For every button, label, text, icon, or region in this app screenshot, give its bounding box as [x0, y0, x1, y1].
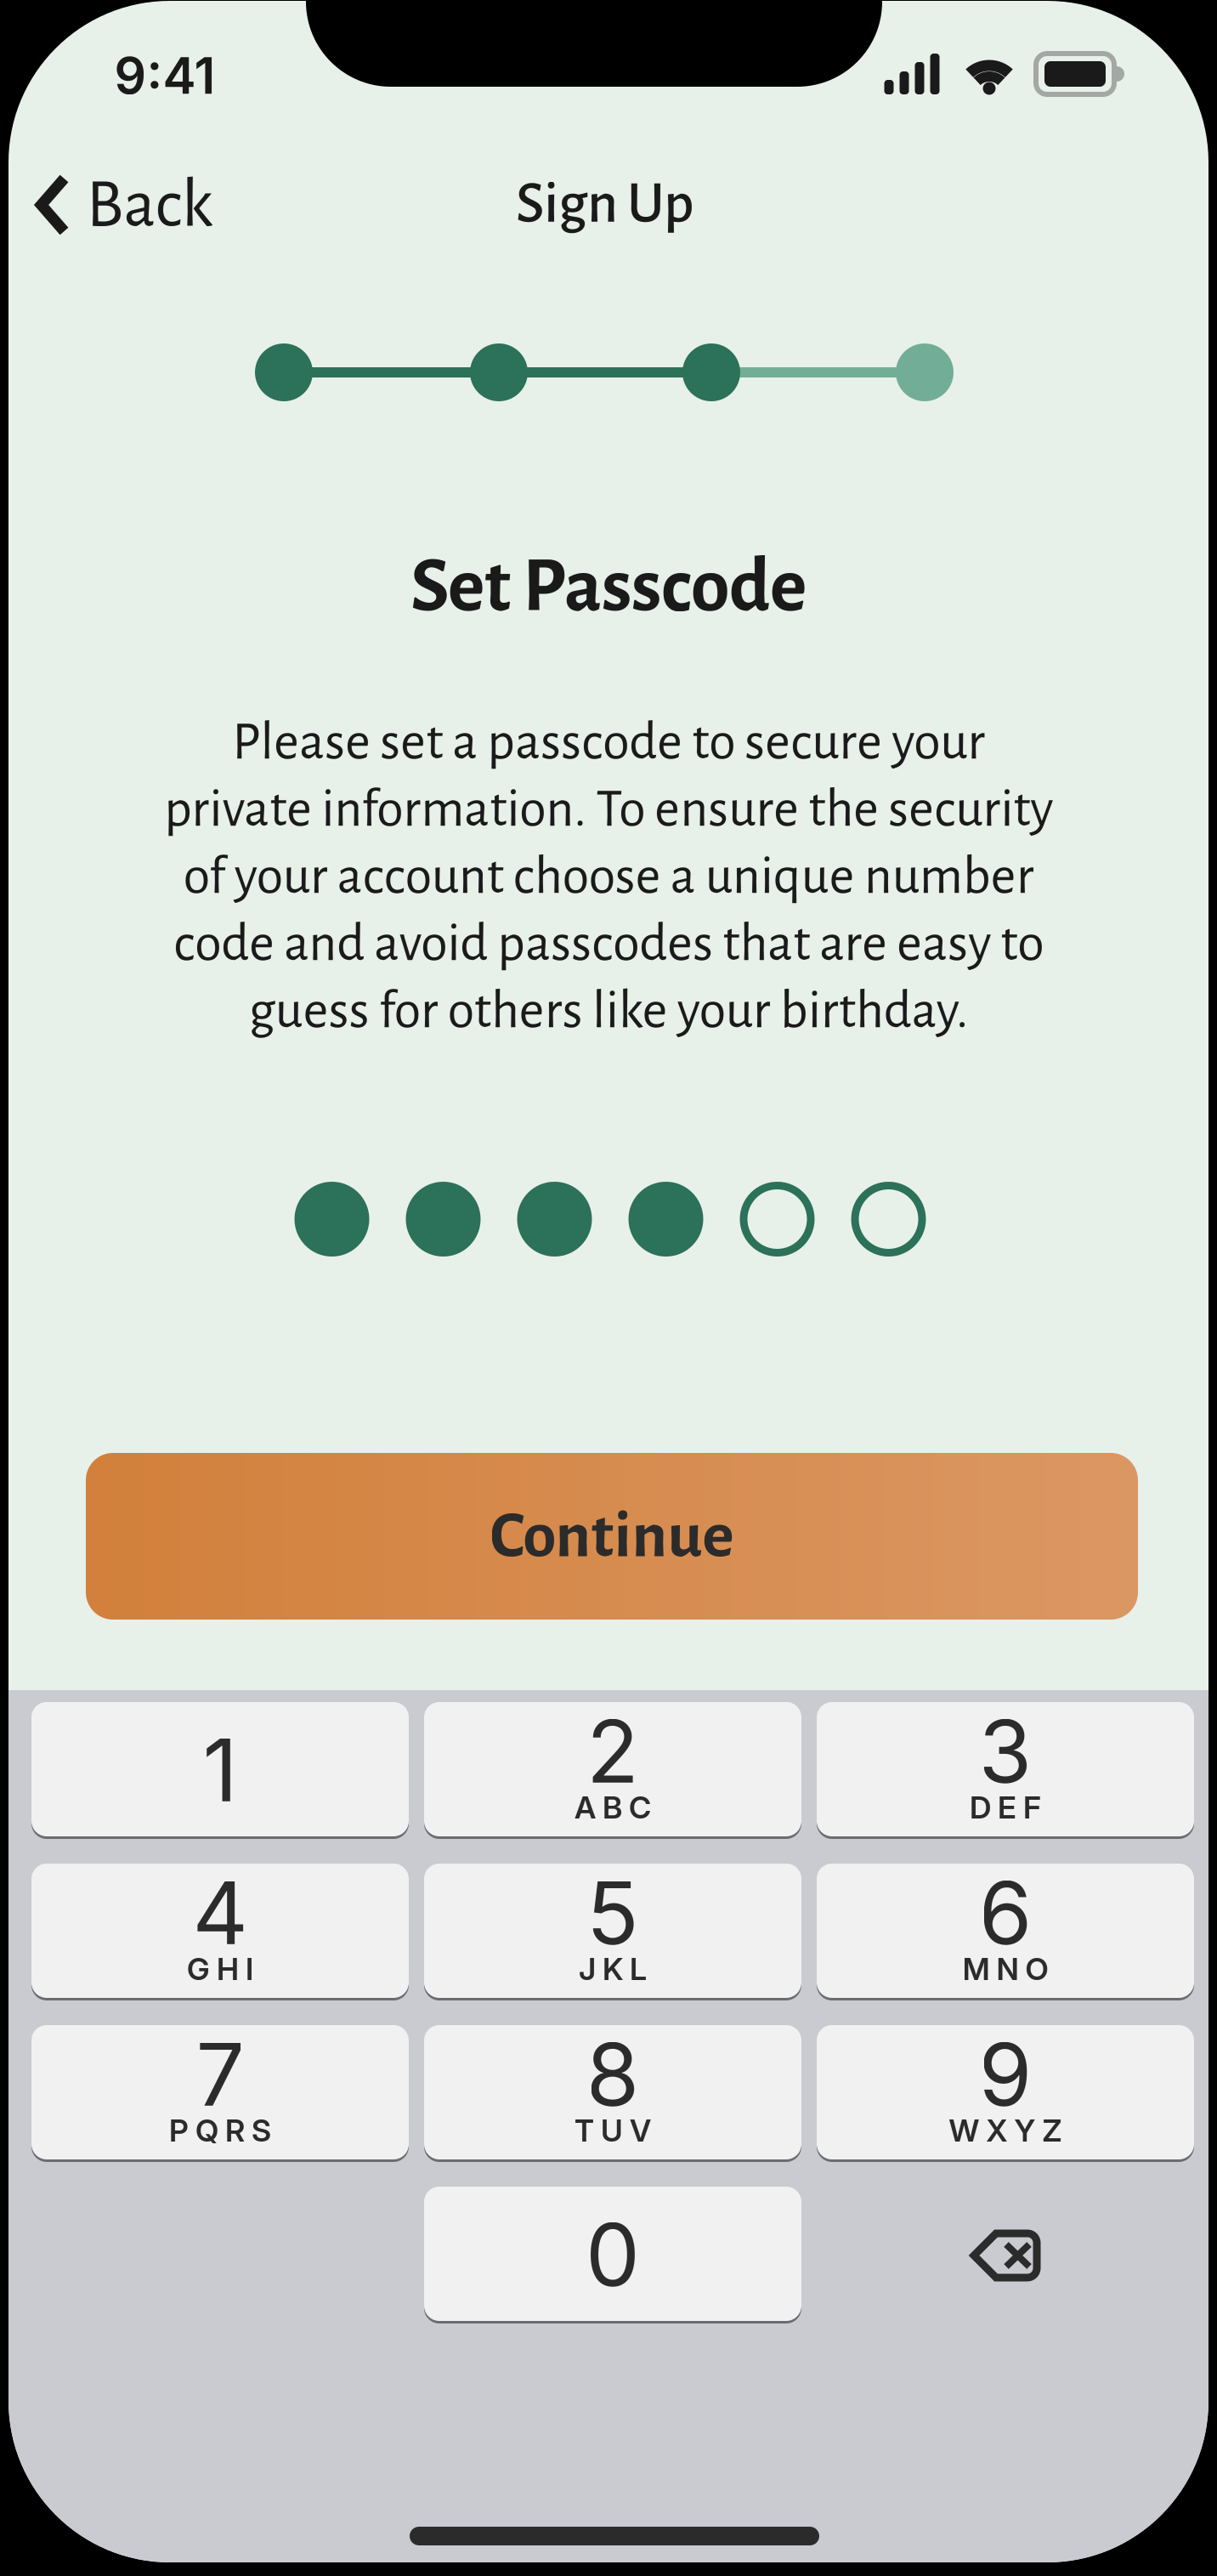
staticText: Continue — [490, 1503, 734, 1570]
button[interactable]: 6 — [817, 1864, 1194, 2001]
staticText: Set Passcode — [410, 548, 807, 626]
button[interactable]: Delete — [817, 2188, 1194, 2323]
button[interactable]: 4 — [31, 1864, 409, 2001]
button[interactable]: 0 — [424, 2187, 801, 2324]
button[interactable]: 1 — [31, 1702, 409, 1840]
staticText: 6 — [979, 1861, 1032, 1965]
staticText: Back — [86, 170, 213, 239]
staticText: 0 — [586, 2203, 640, 2307]
button[interactable]: 3 — [817, 1702, 1194, 1840]
staticText: 7 — [196, 2022, 244, 2127]
button[interactable]: 5 — [424, 1864, 801, 2001]
button[interactable]: Continue — [86, 1453, 1138, 1620]
staticText: 9:41 — [114, 45, 215, 106]
staticText: Sign Up — [516, 175, 694, 233]
staticText: G H I — [187, 1950, 253, 1988]
staticText: D E F — [970, 1789, 1041, 1826]
staticText: 5 — [586, 1861, 639, 1965]
button[interactable]: Back — [15, 152, 233, 258]
button[interactable]: 8 — [424, 2025, 801, 2163]
staticText: Please set a passcode to secure your pri… — [164, 715, 1053, 1038]
staticText: 4 — [192, 1861, 248, 1965]
staticText: 3 — [979, 1699, 1032, 1803]
staticText: J K L — [579, 1950, 647, 1988]
button[interactable]: 7 — [31, 2025, 409, 2163]
staticText: A B C — [575, 1789, 651, 1826]
staticText: 8 — [586, 2022, 640, 2127]
button[interactable]: 9 — [817, 2025, 1194, 2163]
staticText: P Q R S — [169, 2112, 271, 2149]
staticText: 2 — [586, 1699, 639, 1803]
staticText: 1 — [203, 1718, 238, 1822]
staticText: M N O — [962, 1950, 1048, 1988]
staticText: W X Y Z — [949, 2112, 1062, 2149]
button[interactable]: 2 — [424, 1702, 801, 1840]
staticText: T U V — [575, 2112, 651, 2149]
staticText: 9 — [979, 2022, 1032, 2127]
